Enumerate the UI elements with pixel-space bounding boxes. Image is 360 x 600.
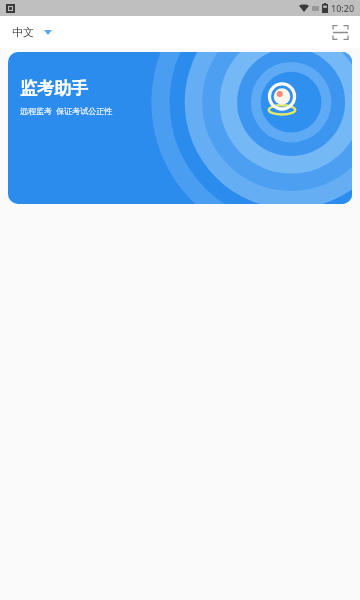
staticText: 远程监考 保证考试公正性 [20,105,113,116]
button[interactable]: 监考助手 [8,52,352,204]
staticText: 中文 [12,25,34,39]
button[interactable]: 中文 [8,22,56,42]
staticText: 10:20 [331,2,355,14]
button[interactable]: Scan QR code [328,20,352,44]
staticText: 监考助手 [20,78,88,99]
